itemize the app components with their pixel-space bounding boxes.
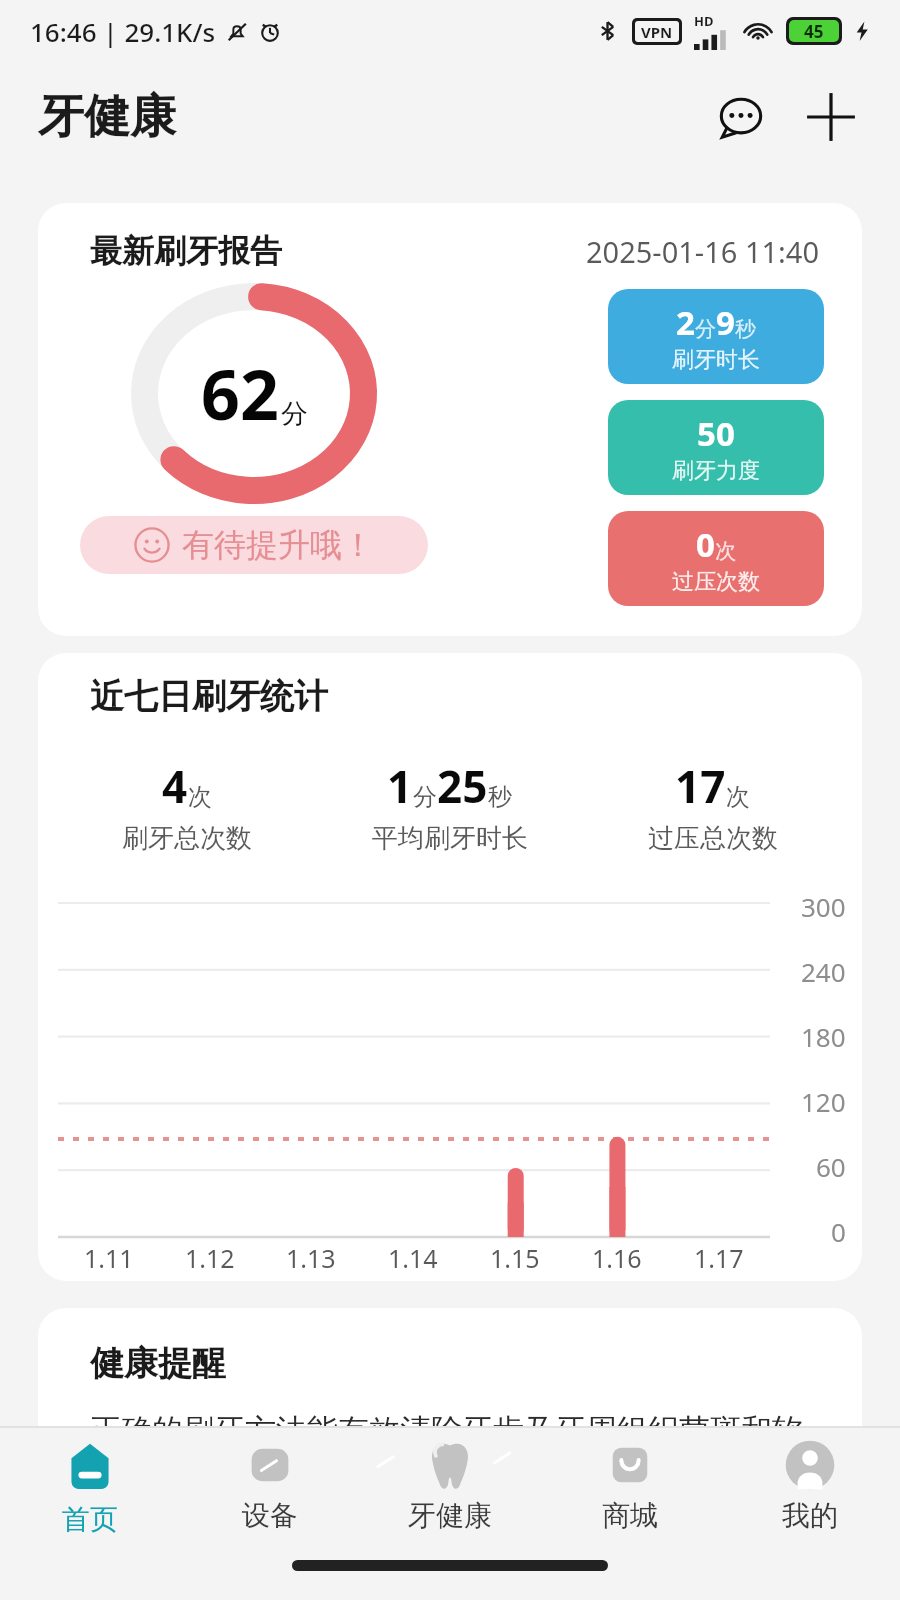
staticText: 1.16 — [592, 1241, 642, 1275]
staticText: 刷牙时长 — [672, 346, 760, 374]
staticText: 设备 — [242, 1498, 298, 1533]
staticText: 平均刷牙时长 — [372, 822, 528, 855]
staticText: HD — [694, 12, 714, 30]
staticText: 最新刷牙报告 — [90, 231, 282, 271]
staticText: 45 — [804, 20, 824, 42]
staticText: 2025-01-16 11:40 — [586, 232, 820, 271]
button[interactable]: 健康提醒 — [38, 1308, 862, 1528]
staticText: 25 — [437, 756, 488, 816]
staticText: 60 — [816, 1149, 846, 1184]
staticText: 有待提升哦！ — [182, 525, 374, 565]
staticText: 1.15 — [490, 1241, 540, 1275]
staticText: 62 — [201, 347, 279, 440]
button[interactable]: 有待提升哦！ — [80, 516, 428, 574]
staticText: 4 — [162, 756, 188, 816]
button[interactable]: 0 — [608, 511, 824, 606]
button[interactable]: 2 — [608, 289, 824, 384]
staticText: 牙健康 — [38, 88, 176, 146]
staticText: 2 — [676, 300, 695, 345]
button[interactable]: 近七日刷牙统计 — [38, 653, 862, 1281]
staticText: 0 — [696, 522, 715, 567]
staticText: 300 — [801, 889, 846, 924]
button[interactable]: 我的 — [720, 1428, 900, 1554]
staticText: 我的 — [782, 1498, 838, 1533]
staticText: 17 — [675, 756, 726, 816]
staticText: 次 — [726, 782, 750, 812]
staticText: 首页 — [62, 1502, 118, 1537]
staticText: 0 — [831, 1214, 846, 1249]
staticText: 秒 — [488, 782, 512, 812]
staticText: 商城 — [602, 1498, 658, 1533]
staticText: 次 — [715, 538, 736, 564]
staticText: 1.12 — [185, 1241, 235, 1275]
staticText: 过压次数 — [672, 568, 760, 596]
staticText: 分 — [281, 397, 308, 431]
staticText: 1.17 — [694, 1241, 744, 1275]
staticText: 近七日刷牙统计 — [90, 675, 328, 718]
staticText: 50 — [697, 411, 735, 456]
staticText: 120 — [801, 1084, 846, 1119]
staticText: 过压总次数 — [648, 822, 778, 855]
staticText: 16:46 | 29.1K/s — [30, 14, 216, 49]
staticText: 9 — [716, 300, 735, 345]
button[interactable]: 50 — [608, 400, 824, 495]
staticText: 1.14 — [388, 1241, 438, 1275]
button[interactable]: 设备 — [180, 1428, 360, 1554]
staticText: 正确的刷牙方法能有效清除牙齿及牙周组织菌斑和软垢，可起到预防龋齿和牙周病的作用。 — [90, 1411, 818, 1491]
staticText: 牙健康 — [408, 1498, 492, 1533]
staticText: 刷牙总次数 — [122, 822, 252, 855]
staticText: 分 — [695, 316, 716, 342]
button[interactable]: Messages — [710, 86, 772, 148]
staticText: 次 — [188, 782, 212, 812]
staticText: VPN — [641, 22, 673, 42]
staticText: 1.11 — [84, 1241, 134, 1275]
button[interactable]: 商城 — [540, 1428, 720, 1554]
button[interactable]: 首页 — [0, 1428, 180, 1554]
staticText: 240 — [801, 954, 846, 989]
staticText: 健康提醒 — [90, 1342, 226, 1385]
staticText: 刷牙力度 — [672, 457, 760, 485]
staticText: 秒 — [735, 316, 756, 342]
button[interactable]: 最新刷牙报告 — [38, 203, 862, 636]
button[interactable]: 牙健康 — [360, 1428, 540, 1554]
staticText: 1 — [387, 756, 413, 816]
button[interactable]: Add — [798, 84, 864, 150]
staticText: 1.13 — [286, 1241, 336, 1275]
staticText: 分 — [413, 782, 437, 812]
staticText: 180 — [801, 1019, 846, 1054]
